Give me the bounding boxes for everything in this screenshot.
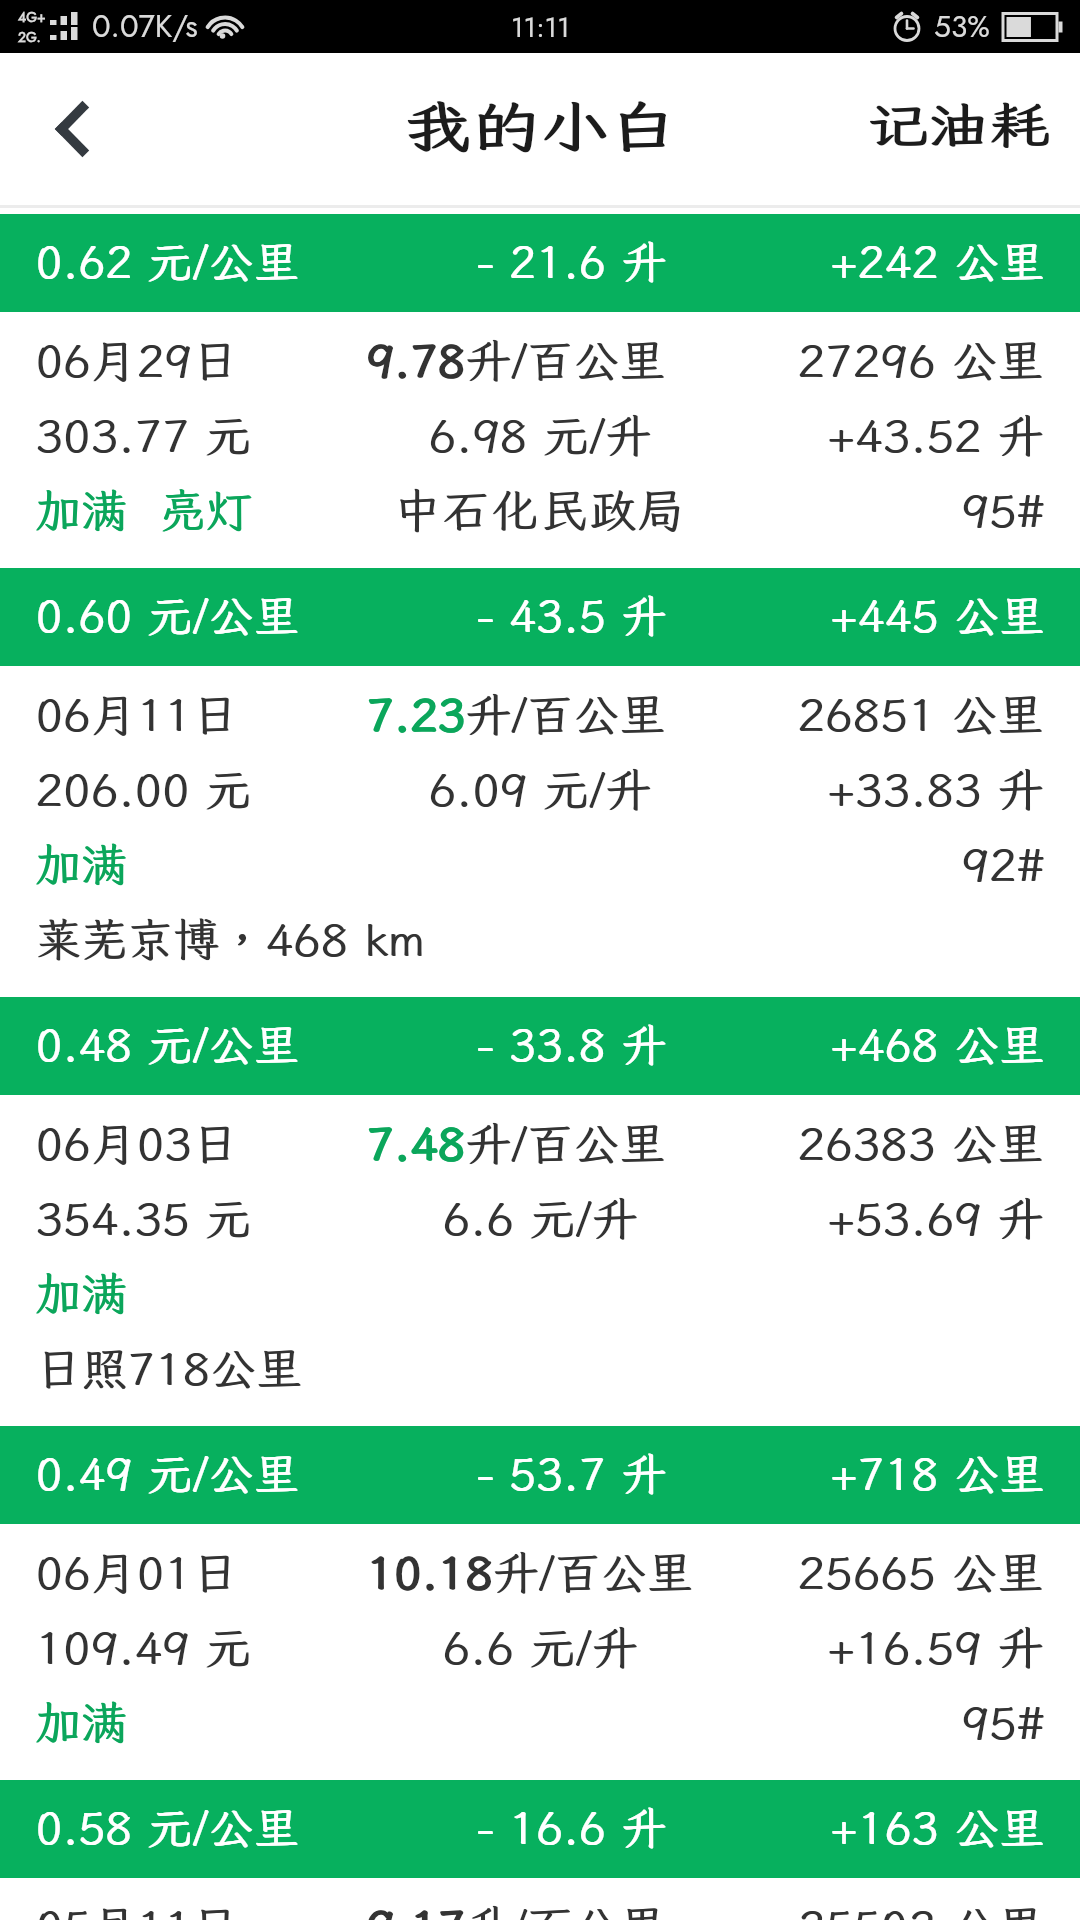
staticText: 25665 公里 — [797, 1542, 1044, 1603]
staticText: - 33.8 升 — [477, 1015, 667, 1074]
staticText: 6.6 元/升 — [442, 1188, 638, 1249]
staticText: - 43.5 升 — [477, 586, 667, 645]
staticText: +163 公里 — [831, 1798, 1045, 1857]
staticText: +242 公里 — [831, 232, 1045, 291]
staticText: 莱芜京博，468 km — [35, 909, 425, 970]
staticText: 6.98 元/升 — [429, 405, 653, 466]
staticText: 206.00 元 — [35, 759, 252, 820]
staticText: +43.52 升 — [828, 405, 1045, 466]
staticText: 26851 公里 — [798, 684, 1045, 745]
staticText: 06月11日 — [36, 684, 239, 745]
staticText: 92# — [962, 834, 1045, 895]
staticText: 0.62 元/公里 — [36, 232, 300, 291]
button[interactable]: 0.58 元/公里 — [0, 1780, 1080, 1920]
staticText: - 16.6 升 — [477, 1798, 667, 1857]
staticText: 06月03日 — [36, 1113, 239, 1174]
staticText: 206.00 元 — [36, 759, 253, 820]
staticText: 06月01日 — [35, 1542, 238, 1603]
staticText: 我的小白 — [403, 89, 678, 163]
staticText: - 33.8 升 — [478, 1015, 668, 1074]
staticText: 7.48升/百公里 — [367, 1113, 667, 1174]
button[interactable]: 记油耗 — [860, 69, 1080, 189]
staticText: 中石化民政局 — [395, 480, 688, 541]
staticText: 莱芜京博，468 km — [36, 909, 426, 970]
staticText: +53.69 升 — [828, 1188, 1045, 1249]
staticText: 6.09 元/升 — [429, 759, 653, 820]
staticText: +242 公里 — [830, 232, 1044, 291]
button[interactable]: 0.60 元/公里 — [0, 568, 1080, 997]
staticText: 53% — [934, 5, 990, 48]
staticText: +445 公里 — [830, 586, 1044, 645]
staticText: 0.49 元/公里 — [36, 1444, 300, 1503]
staticText: 27296 公里 — [798, 330, 1045, 391]
button[interactable]: 0.62 元/公里 — [0, 214, 1080, 568]
staticText: 加满 — [35, 1263, 127, 1324]
staticText: 记油耗 — [867, 91, 1051, 157]
staticText: 6.6 元/升 — [442, 1617, 638, 1678]
staticText: 6.98 元/升 — [428, 405, 652, 466]
staticText: +43.52 升 — [827, 405, 1044, 466]
staticText: 25502 公里 — [797, 1896, 1044, 1920]
staticText: 日照718公里 — [35, 1338, 302, 1399]
staticText: +468 公里 — [830, 1015, 1044, 1074]
staticText: +33.83 升 — [828, 759, 1045, 820]
staticText: 11:11 — [511, 7, 570, 47]
staticText: 06月29日 — [36, 330, 239, 391]
staticText: 加满 — [36, 1692, 128, 1753]
staticText: - 53.7 升 — [478, 1444, 668, 1503]
staticText: +718 公里 — [830, 1444, 1044, 1503]
staticText: 354.35 元 — [35, 1188, 252, 1249]
button[interactable]: 返回 — [24, 74, 120, 184]
staticText: 加满 亮灯 — [36, 480, 253, 541]
staticText: 05月11日 — [36, 1896, 239, 1920]
staticText: 109.49 元 — [35, 1617, 252, 1678]
staticText: +53.69 升 — [827, 1188, 1044, 1249]
staticText: 06月03日 — [35, 1113, 238, 1174]
staticText: 303.77 元 — [35, 405, 252, 466]
staticText: +718 公里 — [831, 1444, 1045, 1503]
staticText: 95# — [962, 480, 1045, 541]
staticText: 95# — [961, 480, 1044, 541]
staticText: 9.78升/百公里 — [367, 330, 667, 391]
staticText: 9.78升/百公里 — [366, 330, 666, 391]
staticText: 0.49 元/公里 — [35, 1444, 299, 1503]
staticText: 加满 — [36, 1263, 128, 1324]
staticText: 记油耗 — [869, 91, 1052, 157]
staticText: 25502 公里 — [798, 1896, 1045, 1920]
staticText: +16.59 升 — [828, 1617, 1045, 1678]
staticText: 日照718公里 — [36, 1338, 303, 1399]
staticText: 303.77 元 — [36, 405, 253, 466]
staticText: 7.23升/百公里 — [367, 684, 667, 745]
staticText: - 16.6 升 — [478, 1798, 668, 1857]
staticText: 27296 公里 — [797, 330, 1044, 391]
staticText: 06月01日 — [36, 1542, 239, 1603]
staticText: 0.48 元/公里 — [36, 1015, 300, 1074]
staticText: +33.83 升 — [827, 759, 1044, 820]
staticText: 0.60 元/公里 — [35, 586, 299, 645]
staticText: +16.59 升 — [827, 1617, 1044, 1678]
staticText: 0.58 元/公里 — [36, 1798, 300, 1857]
staticText: - 43.5 升 — [478, 586, 668, 645]
staticText: 0.58 元/公里 — [35, 1798, 299, 1857]
staticText: - 53.7 升 — [477, 1444, 667, 1503]
staticText: 26383 公里 — [798, 1113, 1045, 1174]
staticText: 06月11日 — [35, 684, 238, 745]
staticText: 6.6 元/升 — [443, 1617, 639, 1678]
staticText: 加满 — [35, 1692, 127, 1753]
staticText: - 21.6 升 — [477, 232, 667, 291]
staticText: 95# — [961, 1692, 1044, 1753]
staticText: 0.60 元/公里 — [36, 586, 300, 645]
staticText: 25665 公里 — [798, 1542, 1045, 1603]
staticText: 06月29日 — [35, 330, 238, 391]
button[interactable]: 0.48 元/公里 — [0, 997, 1080, 1426]
button[interactable]: 0.49 元/公里 — [0, 1426, 1080, 1780]
staticText: 354.35 元 — [36, 1188, 253, 1249]
staticText: +445 公里 — [831, 586, 1045, 645]
staticText: 9.17升/百公里 — [367, 1896, 667, 1920]
staticText: 7.48升/百公里 — [366, 1113, 666, 1174]
staticText: +163 公里 — [830, 1798, 1044, 1857]
staticText: 95# — [962, 1692, 1045, 1753]
staticText: 加满 — [36, 834, 128, 895]
staticText: 0.62 元/公里 — [35, 232, 299, 291]
staticText: 26383 公里 — [797, 1113, 1044, 1174]
